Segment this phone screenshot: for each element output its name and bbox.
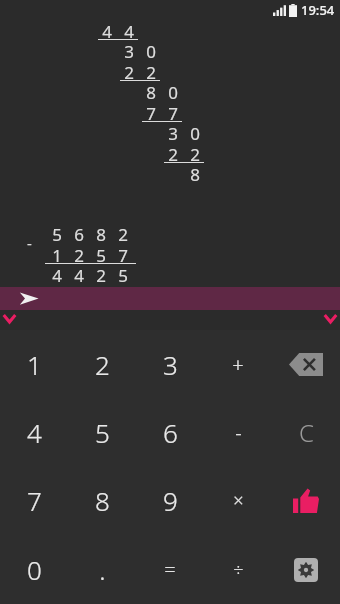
staticText: 0 <box>27 552 42 587</box>
staticText: 8 <box>95 483 110 518</box>
button[interactable]: 0 <box>0 535 68 604</box>
staticText: 4 <box>27 415 42 450</box>
button[interactable]: 5 <box>68 398 136 466</box>
button[interactable]: × <box>204 466 272 535</box>
staticText: 7 <box>118 244 128 265</box>
staticText: 4 <box>74 264 84 285</box>
staticText: 1 <box>52 244 62 265</box>
button[interactable]: Send <box>19 291 39 306</box>
staticText: - <box>27 233 32 253</box>
staticText: 4 <box>52 264 62 285</box>
staticText: 2 <box>118 223 128 244</box>
button[interactable]: 4 <box>0 398 68 466</box>
button[interactable]: - <box>204 398 272 466</box>
staticText: 7 <box>168 102 178 123</box>
staticText: 5 <box>118 264 128 285</box>
staticText: ÷ <box>233 557 244 582</box>
button[interactable]: 9 <box>136 466 204 535</box>
staticText: 3 <box>124 40 134 61</box>
staticText: 2 <box>190 143 200 164</box>
button[interactable]: ÷ <box>204 535 272 604</box>
staticText: 0 <box>190 122 200 143</box>
staticText: 2 <box>168 143 178 164</box>
staticText: 4 <box>102 20 112 41</box>
button[interactable]: 8 <box>68 466 136 535</box>
button[interactable]: + <box>204 330 272 398</box>
staticText: + <box>232 351 244 378</box>
button[interactable]: 7 <box>0 466 68 535</box>
staticText: C <box>299 416 314 449</box>
staticText: 5 <box>95 415 110 450</box>
staticText: 7 <box>146 102 156 123</box>
button[interactable]: C <box>272 398 340 466</box>
button[interactable]: . <box>68 535 136 604</box>
button[interactable]: = <box>136 535 204 604</box>
staticText: 8 <box>190 163 200 184</box>
button[interactable]: Previous <box>1 312 18 326</box>
staticText: 6 <box>163 415 178 450</box>
button[interactable]: Confirm <box>272 466 340 535</box>
staticText: 7 <box>27 483 42 518</box>
staticText: 2 <box>95 347 110 382</box>
button[interactable]: 2 <box>68 330 136 398</box>
button[interactable]: Send <box>0 287 340 310</box>
staticText: 0 <box>168 81 178 102</box>
staticText: - <box>235 419 242 446</box>
staticText: 0 <box>146 40 156 61</box>
staticText: 1 <box>27 347 42 382</box>
staticText: 9 <box>163 483 178 518</box>
staticText: 2 <box>74 244 84 265</box>
staticText: 2 <box>96 264 106 285</box>
staticText: × <box>233 488 244 513</box>
button[interactable]: Settings <box>272 535 340 604</box>
staticText: 6 <box>74 223 84 244</box>
staticText: 8 <box>146 81 156 102</box>
button[interactable]: Backspace <box>272 330 340 398</box>
staticText: 5 <box>52 223 62 244</box>
staticText: = <box>164 556 176 583</box>
staticText: 3 <box>163 347 178 382</box>
button[interactable]: 6 <box>136 398 204 466</box>
staticText: 8 <box>96 223 106 244</box>
staticText: 2 <box>124 61 134 82</box>
staticText: 3 <box>168 122 178 143</box>
staticText: 2 <box>146 61 156 82</box>
staticText: 4 <box>124 20 134 41</box>
button[interactable]: 1 <box>0 330 68 398</box>
staticText: 5 <box>96 244 106 265</box>
button[interactable]: Next <box>322 312 339 326</box>
staticText: 19:54 <box>301 1 335 19</box>
staticText: . <box>99 552 106 587</box>
button[interactable]: 3 <box>136 330 204 398</box>
